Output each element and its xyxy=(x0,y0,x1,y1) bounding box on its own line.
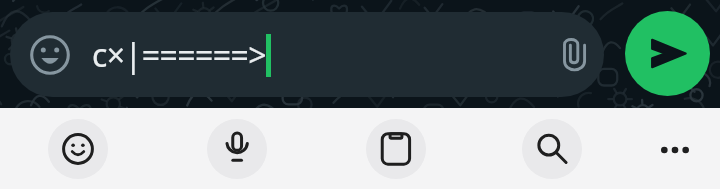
button[interactable]: Clipboard xyxy=(366,119,426,179)
button[interactable]: Send xyxy=(625,11,710,96)
button[interactable]: More options xyxy=(646,121,704,179)
button[interactable]: Attach xyxy=(551,34,595,78)
button[interactable]: Voice input xyxy=(207,119,267,179)
button[interactable]: Search xyxy=(522,119,582,179)
staticText: c×|======> xyxy=(92,33,266,77)
button[interactable]: Emoji keyboard xyxy=(48,119,108,179)
button[interactable]: Emoji xyxy=(29,34,71,76)
